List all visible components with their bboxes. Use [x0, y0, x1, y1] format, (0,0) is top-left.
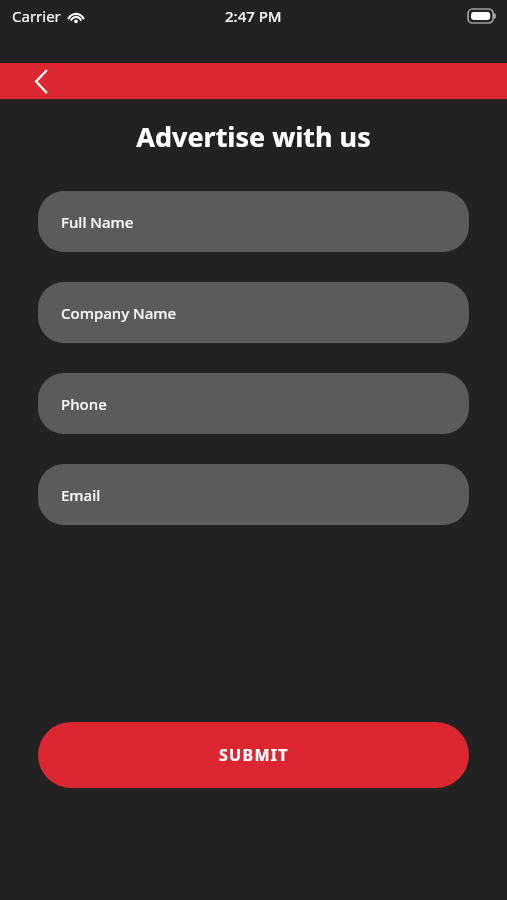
button[interactable]: Phone: [38, 373, 469, 434]
staticText: Carrier: [12, 6, 61, 26]
staticText: 2:47 PM: [225, 6, 282, 26]
staticText: Phone: [61, 394, 107, 414]
staticText: Company Name: [61, 303, 177, 323]
staticText: Email: [61, 485, 101, 505]
staticText: SUBMIT: [219, 744, 289, 766]
button[interactable]: Email: [38, 464, 469, 525]
staticText: Advertise with us: [0, 118, 507, 155]
staticText: Full Name: [61, 212, 134, 232]
button[interactable]: SUBMIT: [38, 722, 469, 788]
button[interactable]: Company Name: [38, 282, 469, 343]
button[interactable]: Back: [22, 63, 62, 99]
button[interactable]: Full Name: [38, 191, 469, 252]
